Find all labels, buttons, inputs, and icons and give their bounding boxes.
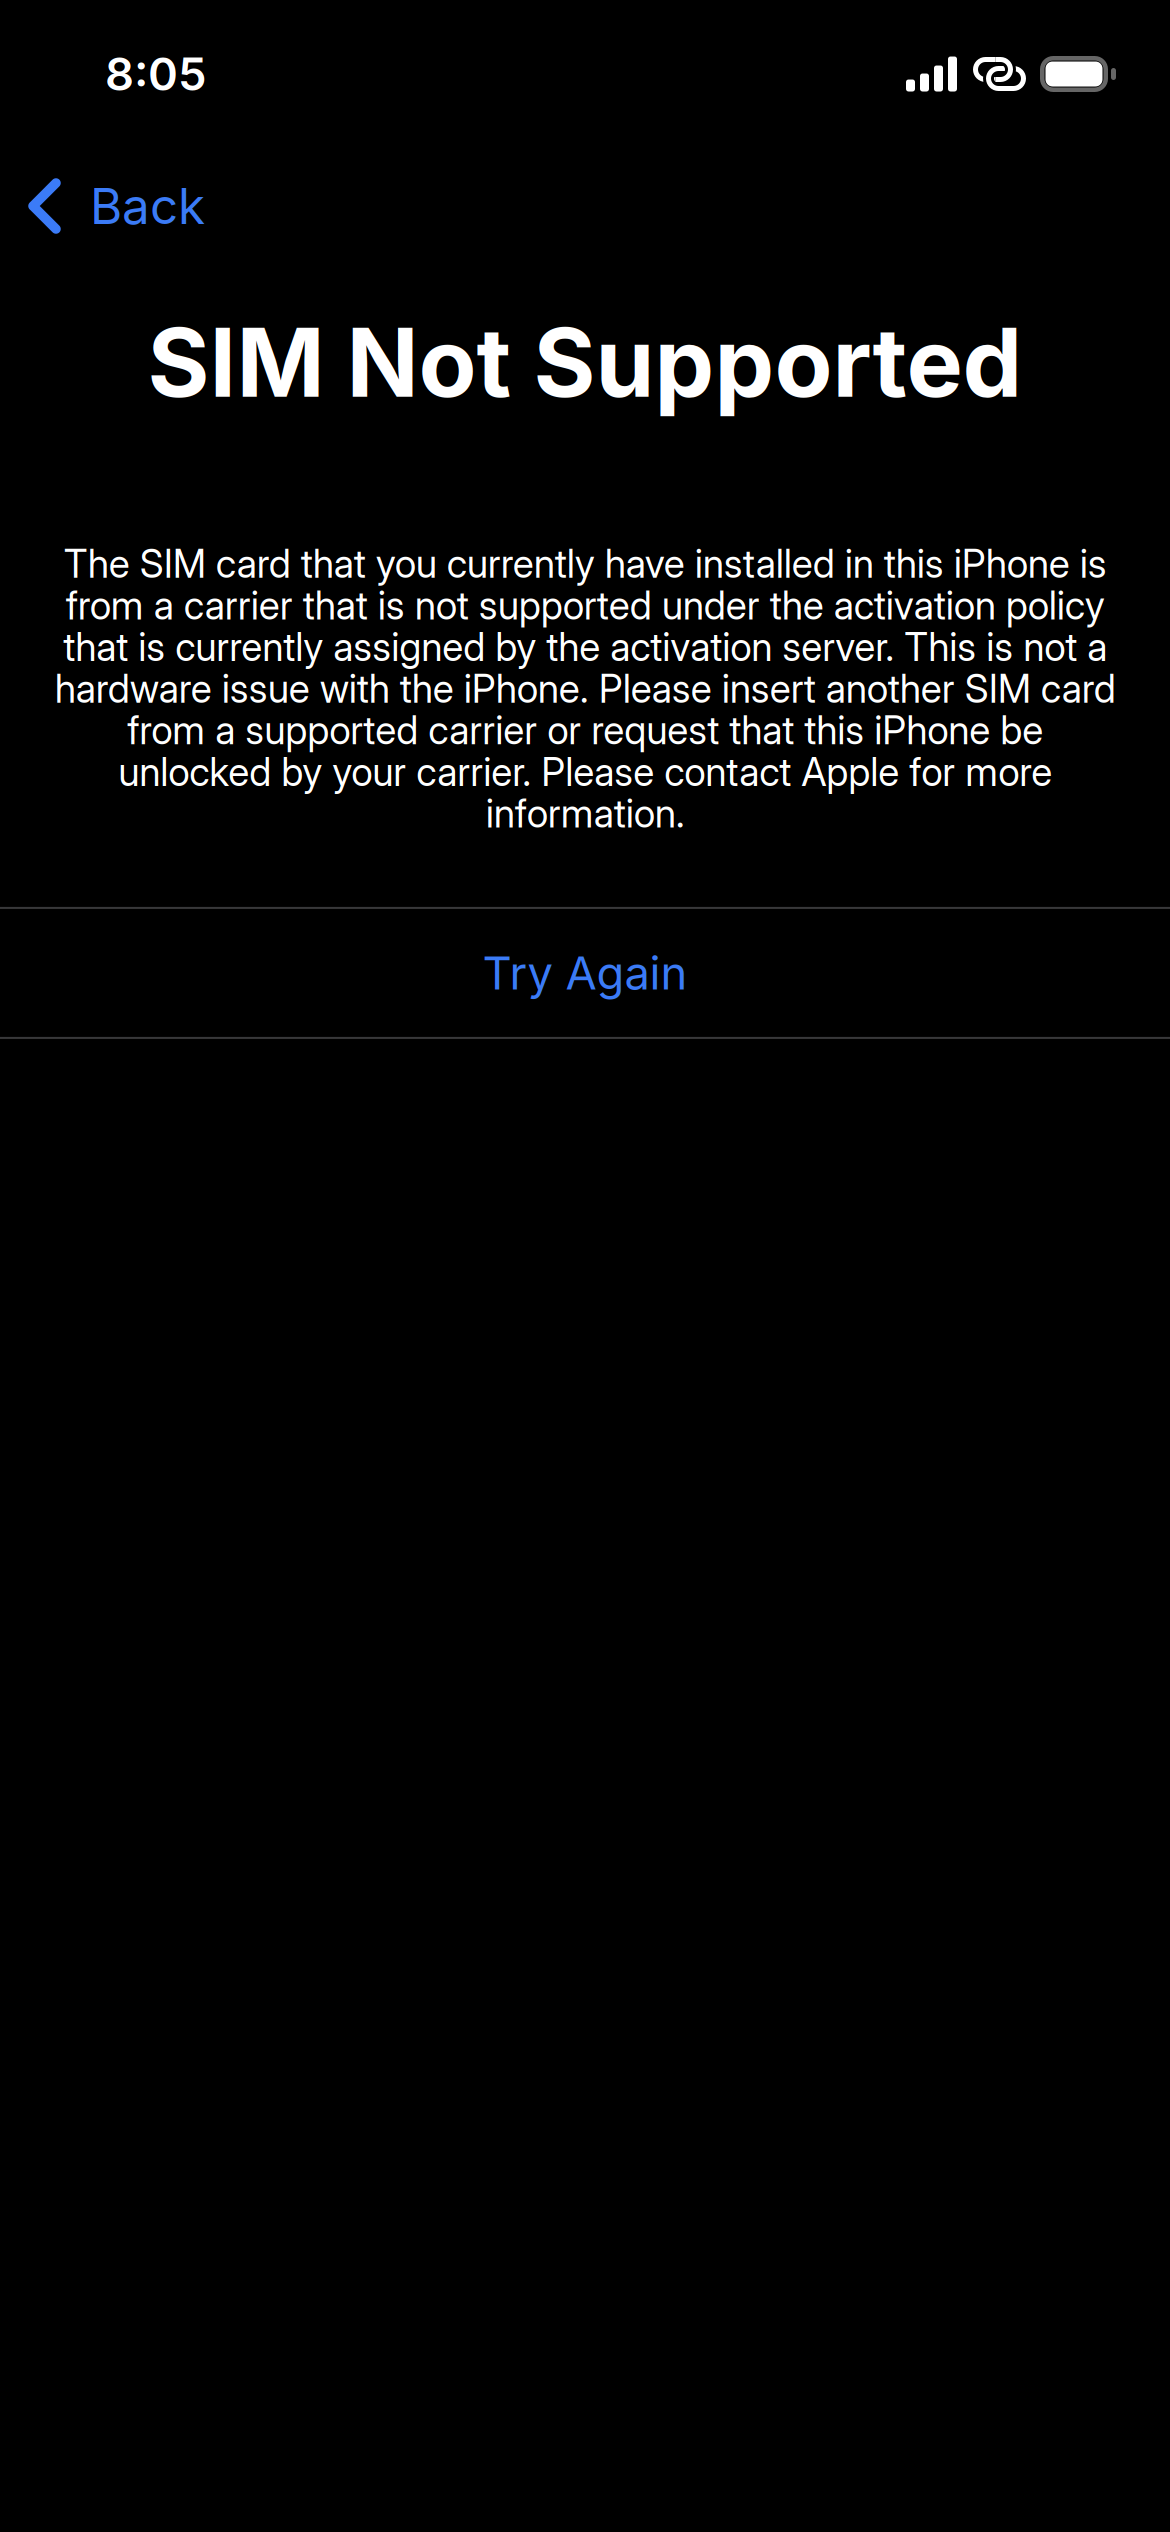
staticText: 8:05: [105, 47, 207, 101]
button[interactable]: Back: [0, 162, 231, 250]
staticText: The SIM card that you currently have ins…: [54, 540, 1115, 837]
button[interactable]: Try Again: [0, 909, 1170, 1037]
staticText: Try Again: [482, 945, 687, 1000]
staticText: Back: [90, 176, 205, 236]
staticText: SIM Not Supported: [147, 305, 1022, 419]
